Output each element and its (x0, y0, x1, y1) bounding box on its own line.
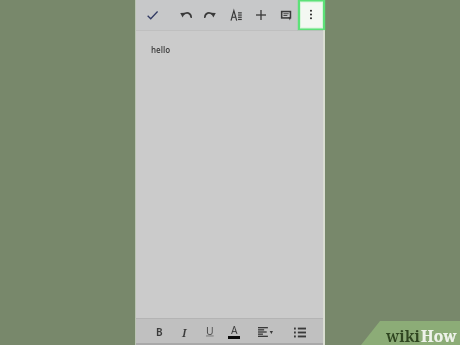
button[interactable]: Redo (198, 3, 222, 27)
staticText: A (231, 323, 238, 337)
staticText: B (156, 325, 163, 339)
staticText: How (421, 325, 457, 345)
staticText: I (182, 325, 187, 340)
button[interactable]: Comment (274, 3, 298, 27)
button[interactable]: B (148, 321, 170, 343)
staticText: wiki (386, 325, 421, 345)
button[interactable]: Insert (249, 3, 273, 27)
button[interactable]: Paragraph alignment (253, 320, 277, 344)
button[interactable]: Done (140, 3, 164, 27)
button[interactable]: Text formatting (224, 3, 248, 27)
button[interactable]: List (288, 320, 312, 344)
button[interactable]: Text colour (224, 320, 244, 342)
staticText: hello (151, 44, 171, 55)
button[interactable]: I (173, 321, 195, 343)
button[interactable]: U (199, 320, 221, 342)
button[interactable]: Undo (174, 3, 198, 27)
staticText: U (206, 324, 214, 338)
button[interactable]: More options (296, 0, 326, 31)
